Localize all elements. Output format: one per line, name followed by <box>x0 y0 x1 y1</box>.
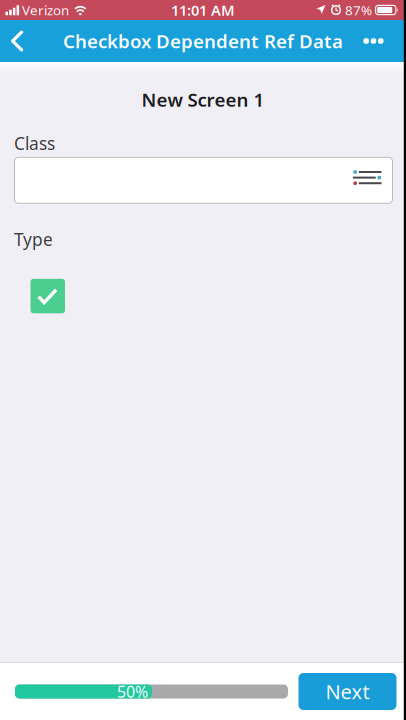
button[interactable]: Type checkbox <box>0 279 65 313</box>
staticText: Verizon <box>22 1 69 19</box>
staticText: Class <box>14 132 55 155</box>
staticText: Checkbox Dependent Ref Data <box>63 29 343 53</box>
staticText: Next <box>325 678 369 705</box>
staticText: New Screen 1 <box>141 87 264 112</box>
staticText: 87% <box>345 1 372 19</box>
staticText: Type <box>14 228 53 251</box>
button[interactable]: Next <box>298 673 396 710</box>
button[interactable]: Class picker <box>0 157 406 204</box>
staticText: 11:01 AM <box>171 0 235 20</box>
button[interactable]: Back <box>0 20 33 62</box>
button[interactable]: More <box>353 20 406 62</box>
staticText: 50% <box>117 681 148 702</box>
